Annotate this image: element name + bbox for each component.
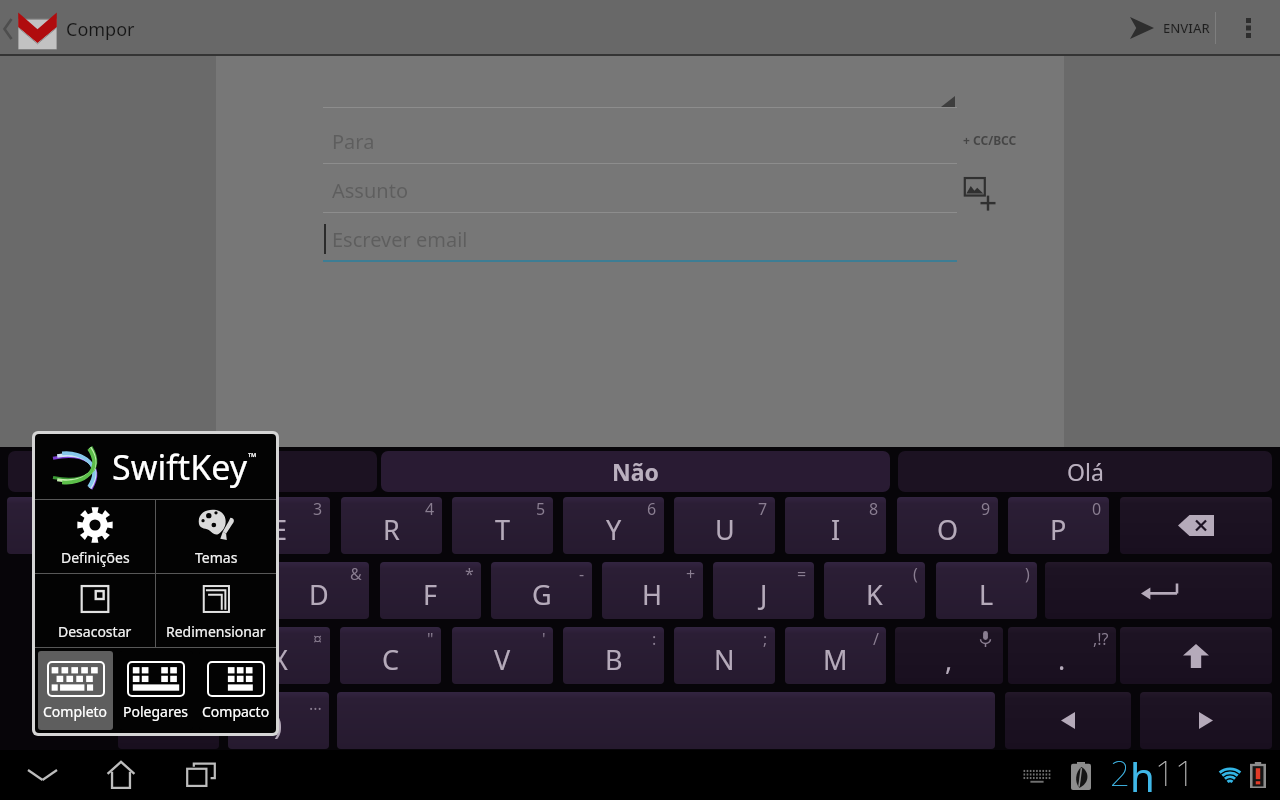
button[interactable]: Shift bbox=[1120, 627, 1272, 684]
button[interactable]: Escrever email bbox=[323, 213, 957, 261]
staticText: Não bbox=[612, 456, 659, 487]
button[interactable]: J bbox=[713, 562, 814, 619]
button[interactable]: C bbox=[340, 627, 441, 684]
button[interactable]: V bbox=[452, 627, 553, 684]
button[interactable]: B bbox=[563, 627, 664, 684]
staticText: ( bbox=[913, 563, 918, 585]
staticText: O bbox=[937, 511, 959, 548]
staticText: Z bbox=[161, 641, 177, 678]
button[interactable]: Z bbox=[118, 627, 219, 684]
button[interactable]: Space bbox=[337, 692, 995, 749]
button[interactable]: Temas bbox=[156, 500, 276, 573]
button[interactable]: F bbox=[380, 562, 481, 619]
staticText: Redimensionar bbox=[166, 622, 266, 641]
staticText: M bbox=[823, 641, 848, 678]
staticText: / bbox=[873, 628, 879, 650]
button[interactable]: G bbox=[491, 562, 592, 619]
button[interactable]: Move cursor left bbox=[1005, 692, 1131, 749]
staticText: Compacto bbox=[202, 702, 270, 721]
staticText: 2 bbox=[202, 498, 212, 520]
button[interactable]: D bbox=[268, 562, 369, 619]
button[interactable]: Não bbox=[381, 451, 890, 492]
staticText: SwiftKey bbox=[112, 444, 248, 490]
button[interactable]: X bbox=[229, 627, 330, 684]
button[interactable]: Q bbox=[7, 497, 108, 554]
button[interactable]: Definições bbox=[35, 500, 155, 573]
button[interactable]: More options bbox=[1228, 0, 1268, 55]
button[interactable]: N bbox=[674, 627, 775, 684]
button[interactable]: ?123 bbox=[118, 692, 219, 749]
staticText: S bbox=[200, 576, 215, 613]
staticText: H bbox=[642, 576, 663, 613]
staticText: Para bbox=[332, 128, 375, 155]
button[interactable]: Y bbox=[563, 497, 664, 554]
button[interactable]: I bbox=[785, 497, 886, 554]
button[interactable]: T bbox=[452, 497, 553, 554]
button[interactable]: Desacostar bbox=[35, 574, 155, 647]
staticText: 6 bbox=[647, 498, 657, 520]
button[interactable]: O bbox=[897, 497, 998, 554]
staticText: X bbox=[272, 641, 288, 678]
button[interactable]: Polegares bbox=[119, 651, 193, 730]
button[interactable]: ) bbox=[228, 692, 329, 749]
staticText: ' bbox=[542, 628, 546, 650]
button[interactable]: ENVIAR bbox=[1124, 0, 1216, 55]
staticText: ¤ bbox=[313, 628, 323, 650]
staticText: G bbox=[532, 576, 552, 613]
button[interactable]: . bbox=[1008, 627, 1116, 684]
staticText: K bbox=[866, 576, 883, 613]
button[interactable]: A bbox=[46, 562, 147, 619]
staticText: Temas bbox=[195, 548, 238, 567]
staticText: F bbox=[423, 576, 438, 613]
button[interactable]: , bbox=[895, 627, 1003, 684]
staticText: A bbox=[88, 576, 106, 613]
button[interactable]: Compacto bbox=[199, 651, 273, 730]
button[interactable]: Suggestion bbox=[8, 451, 377, 492]
staticText: ) bbox=[1025, 563, 1030, 585]
button[interactable]: + CC/BCC bbox=[960, 124, 1014, 154]
staticText: D bbox=[309, 576, 329, 613]
staticText: @ bbox=[125, 563, 140, 585]
button[interactable]: Status bar, 2h11, Wi-Fi, battery low bbox=[1010, 750, 1280, 800]
staticText: 2 bbox=[1110, 749, 1130, 793]
button[interactable]: M bbox=[785, 627, 886, 684]
staticText: & bbox=[350, 563, 362, 585]
button[interactable]: Backspace bbox=[1120, 497, 1272, 554]
button[interactable]: Home bbox=[97, 750, 145, 800]
button[interactable]: S bbox=[157, 562, 258, 619]
button[interactable]: K bbox=[824, 562, 925, 619]
button[interactable]: Move cursor right bbox=[1140, 692, 1272, 749]
button[interactable]: Completo bbox=[38, 651, 113, 730]
staticText: Polegares bbox=[123, 702, 189, 721]
staticText: 1 bbox=[91, 498, 101, 520]
button[interactable]: Olá bbox=[898, 451, 1272, 492]
button[interactable]: W bbox=[118, 497, 219, 554]
button[interactable]: U bbox=[674, 497, 775, 554]
button[interactable]: P bbox=[1008, 497, 1109, 554]
staticText: L bbox=[979, 576, 994, 613]
button[interactable]: H bbox=[602, 562, 703, 619]
button[interactable]: Back bbox=[18, 750, 66, 800]
staticText: . bbox=[1058, 641, 1066, 678]
button[interactable]: Enter bbox=[1045, 562, 1272, 619]
staticText: + bbox=[686, 563, 696, 585]
staticText: ,!? bbox=[1093, 628, 1109, 650]
staticText: Escrever email bbox=[332, 226, 468, 253]
button[interactable]: Redimensionar bbox=[156, 574, 276, 647]
button[interactable]: L bbox=[936, 562, 1037, 619]
button[interactable]: R bbox=[341, 497, 442, 554]
staticText: ; bbox=[763, 628, 768, 650]
button[interactable]: Recent apps bbox=[177, 750, 225, 800]
staticText: Assunto bbox=[332, 177, 408, 204]
button[interactable]: Attach picture bbox=[960, 175, 1000, 213]
staticText: 7 bbox=[758, 498, 768, 520]
button[interactable]: Navigate up bbox=[0, 0, 66, 55]
staticText: R bbox=[383, 511, 400, 548]
staticText: ) bbox=[274, 706, 283, 743]
button[interactable]: E bbox=[229, 497, 330, 554]
staticText: 11 bbox=[1155, 749, 1195, 793]
staticText: 3 bbox=[313, 498, 323, 520]
